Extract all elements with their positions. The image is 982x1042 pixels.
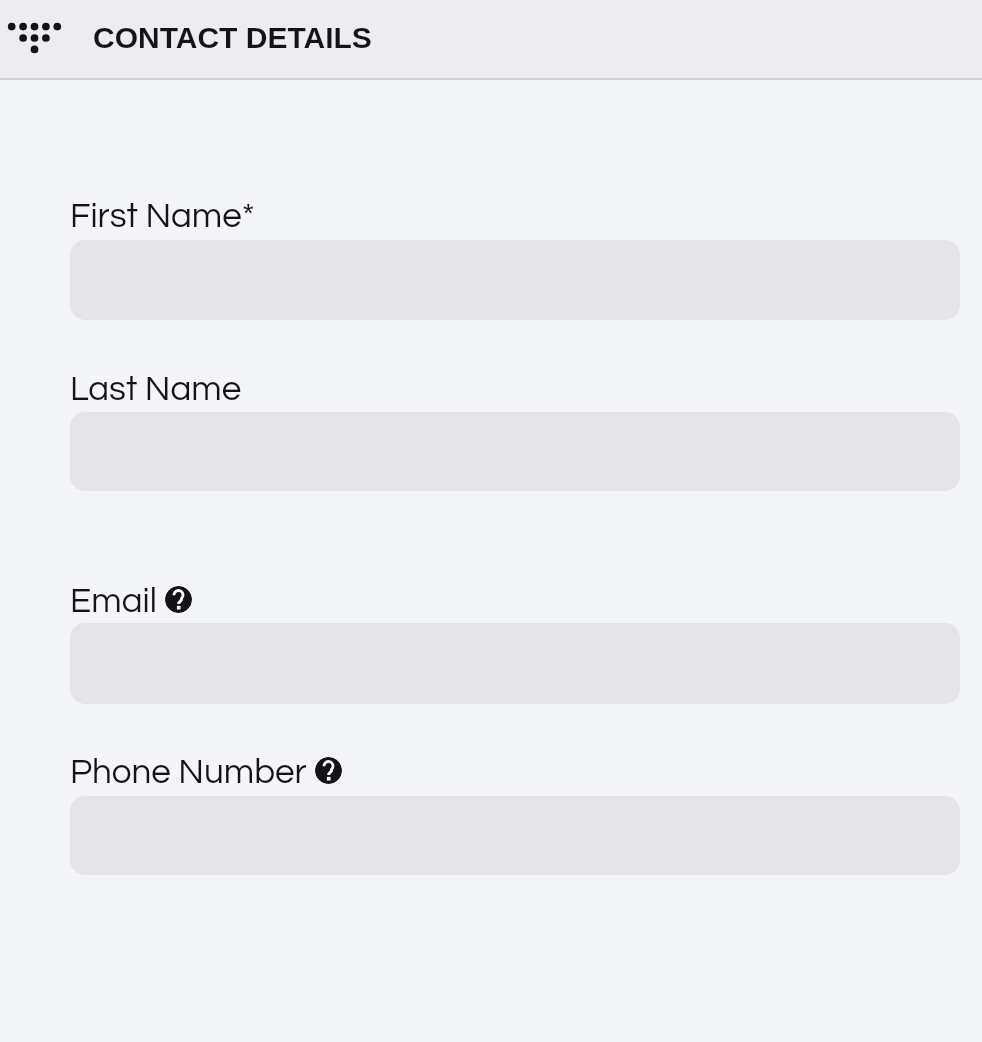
staticText: Phone Number xyxy=(70,754,307,790)
staticText: Last Name xyxy=(70,371,242,407)
button[interactable]: Help xyxy=(165,586,192,613)
button[interactable]: Help xyxy=(315,757,342,784)
button[interactable]: Email xyxy=(70,583,157,619)
button[interactable]: First Name* xyxy=(70,198,255,234)
staticText: Email xyxy=(70,583,157,619)
staticText: CONTACT DETAILS xyxy=(93,21,372,55)
staticText: First Name* xyxy=(70,198,255,234)
button[interactable]: CONTACT DETAILS xyxy=(93,21,372,55)
button[interactable]: Phone Number xyxy=(70,754,307,790)
button[interactable]: Last Name xyxy=(70,371,242,407)
button[interactable]: App logo xyxy=(4,10,68,68)
